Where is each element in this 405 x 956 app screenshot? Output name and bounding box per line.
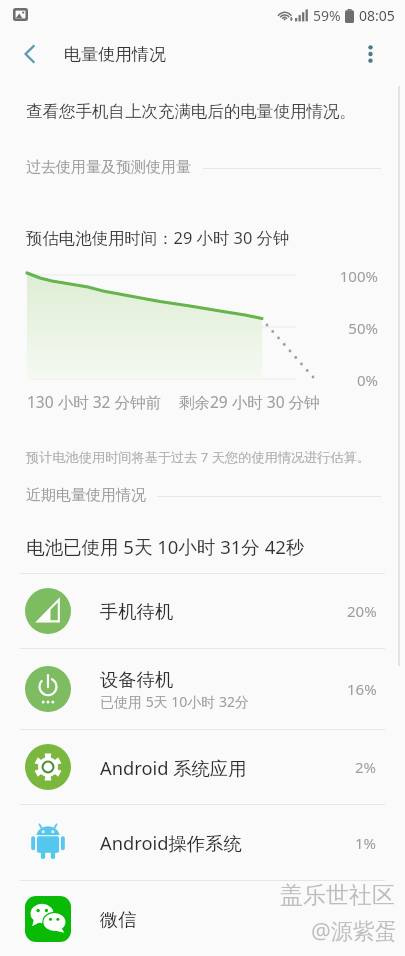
staticText: 近期电量使用情况 [26,486,146,505]
staticText: @源紫蛋 [311,915,397,945]
staticText: Android 系统应用 [100,755,247,780]
button[interactable]: Android 系统应用 [0,730,405,804]
button[interactable]: 手机待机 [0,574,405,648]
staticText: 100% [320,266,378,286]
button[interactable]: More options [348,32,392,76]
staticText: 130 小时 32 分钟前 [27,391,161,412]
staticText: 盖乐世社区 [280,881,395,910]
staticText: 1% [355,833,377,853]
staticText: 电量使用情况 [64,44,166,65]
staticText: 08:05 [359,6,395,25]
staticText: 设备待机 [100,668,174,691]
staticText: 16% [347,679,377,699]
staticText: 查看您手机自上次充满电后的电量使用情况。 [26,101,356,122]
staticText: 0% [320,370,378,390]
staticText: 50% [320,318,378,338]
button[interactable]: 微信 [0,881,405,956]
staticText: 59% [313,6,341,25]
staticText: 20% [347,601,377,621]
button[interactable]: 设备待机 [0,649,405,729]
staticText: 微信 [100,908,137,931]
staticText: 手机待机 [100,600,174,623]
staticText: 预估电池使用时间：29 小时 30 分钟 [26,226,290,248]
staticText: 过去使用量及预测使用量 [26,158,191,177]
staticText: 剩余29 小时 30 分钟 [179,391,320,412]
staticText: Android操作系统 [100,830,242,855]
button[interactable]: Android操作系统 [0,805,405,880]
button[interactable]: Back [8,32,52,76]
staticText: 已使用 5天 10小时 32分 [100,692,249,711]
staticText: 2% [355,757,377,777]
staticText: 预计电池使用时间将基于过去 7 天您的使用情况进行估算。 [26,448,371,466]
staticText: 电池已使用 5天 10小时 31分 42秒 [26,534,305,559]
